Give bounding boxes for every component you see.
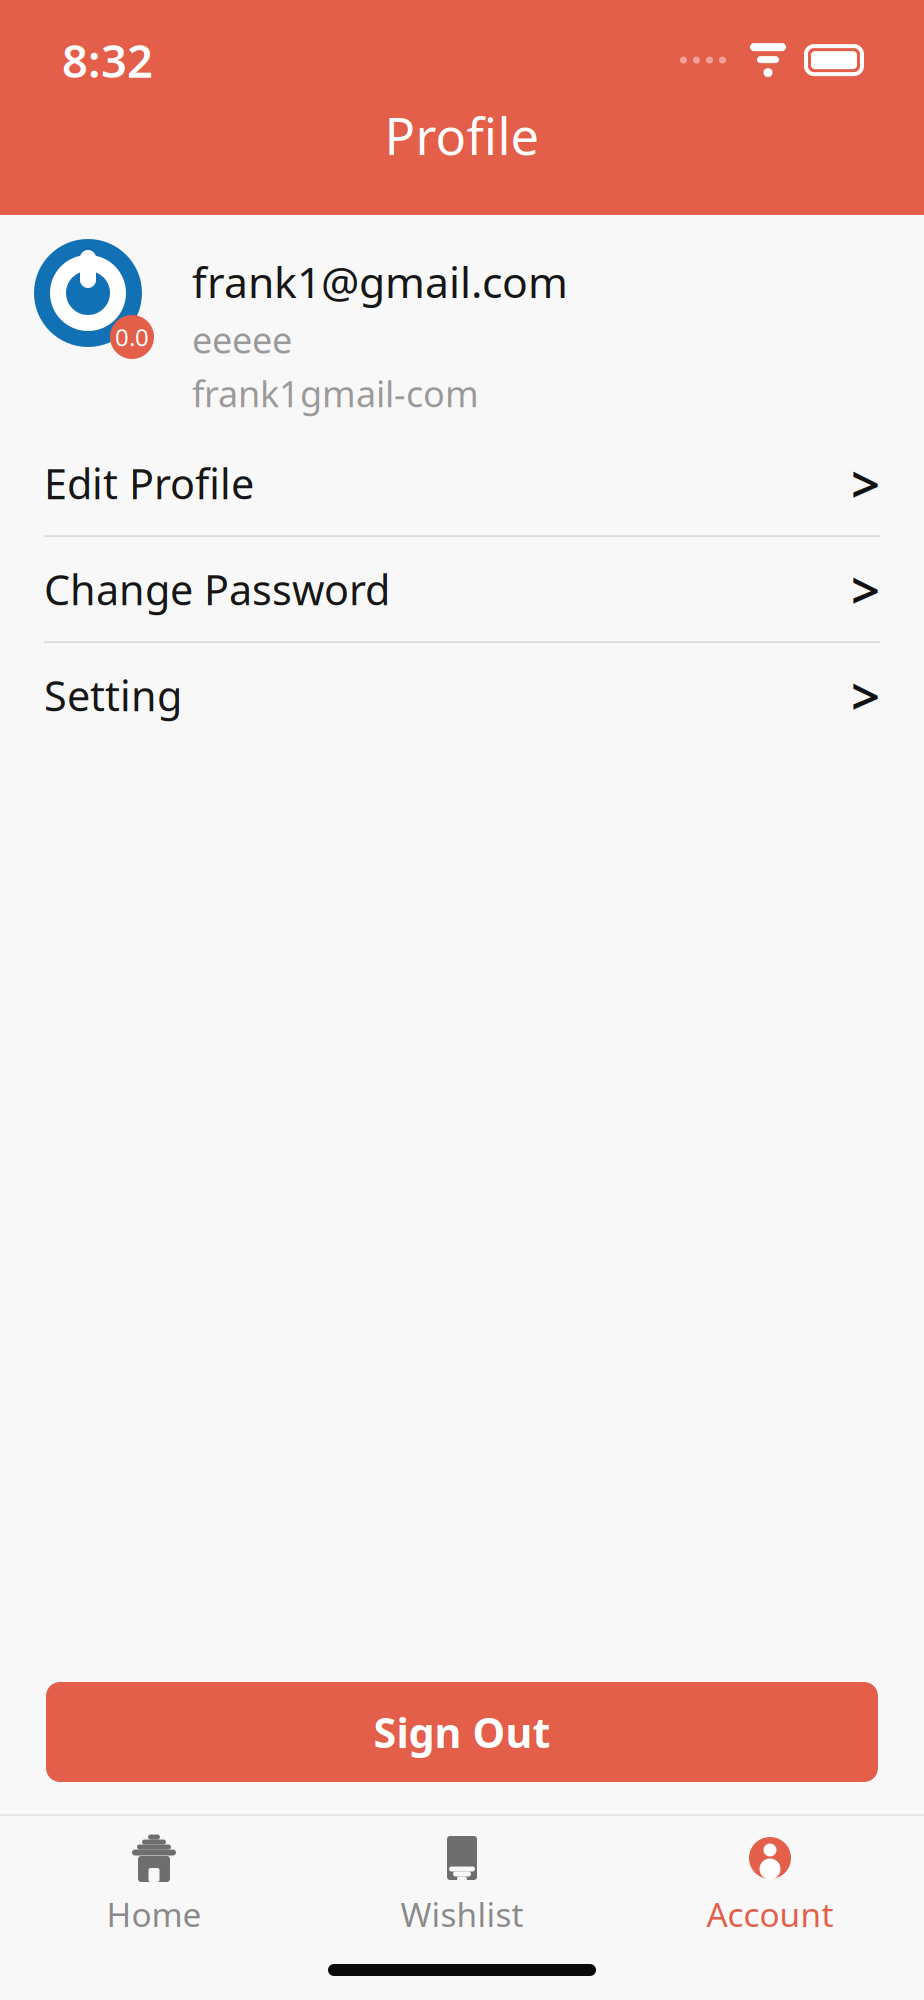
staticText: >	[851, 450, 880, 517]
staticText: Change Password	[44, 562, 390, 617]
staticText: Profile	[384, 102, 539, 169]
staticText: Account	[706, 1892, 833, 1936]
button[interactable]: Setting	[0, 643, 924, 747]
staticText: Home	[106, 1892, 201, 1936]
button[interactable]: Wishlist	[308, 1834, 616, 1936]
staticText: frank1gmail-com	[192, 369, 479, 417]
button[interactable]: Change Password	[0, 537, 924, 641]
staticText: eeeee	[192, 316, 292, 363]
staticText: Setting	[44, 668, 182, 723]
staticText: Sign Out	[373, 1705, 550, 1759]
staticText: Edit Profile	[44, 456, 254, 511]
button[interactable]: Sign Out	[46, 1682, 878, 1782]
staticText: 8:32	[62, 30, 153, 90]
button[interactable]: Account	[616, 1834, 924, 1936]
staticText: >	[851, 556, 880, 623]
staticText: 0.0	[115, 321, 149, 353]
staticText: Wishlist	[400, 1892, 523, 1936]
staticText: frank1@gmail.com	[192, 253, 568, 310]
staticText: >	[851, 662, 880, 729]
button[interactable]: Edit Profile	[0, 431, 924, 535]
button[interactable]: Home	[0, 1834, 308, 1936]
